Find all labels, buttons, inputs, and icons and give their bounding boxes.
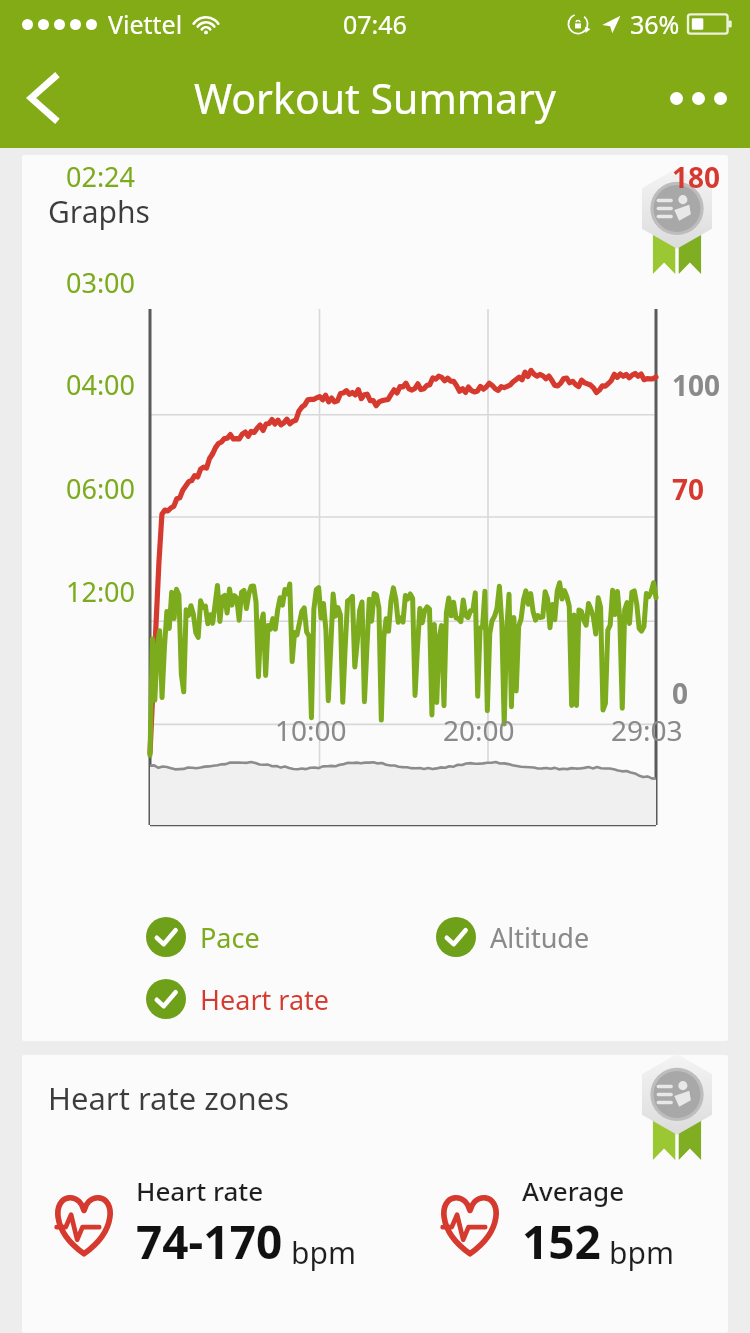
staticText: 03:00 (66, 264, 136, 301)
button[interactable]: Average (432, 1173, 674, 1273)
staticText: Average (522, 1173, 625, 1208)
staticText: 180 (672, 158, 721, 196)
staticText: 06:00 (66, 470, 136, 507)
button[interactable]: Heart rate (144, 977, 332, 1021)
staticText: 20:00 (443, 711, 515, 749)
staticText: Viettel (108, 7, 183, 41)
staticText: 70 (672, 470, 705, 508)
staticText: Heart rate zones (48, 1077, 290, 1119)
staticText: 29:03 (611, 711, 683, 749)
staticText: 02:24 (66, 158, 136, 195)
staticText: Altitude (490, 919, 590, 956)
staticText: Heart rate (136, 1173, 264, 1208)
button[interactable]: More options (658, 62, 738, 134)
staticText: 36% (630, 7, 680, 41)
staticText: Workout Summary (194, 70, 556, 126)
button[interactable]: Back (8, 62, 80, 134)
staticText: Pace (200, 919, 260, 956)
button[interactable]: Heart rate (46, 1173, 356, 1273)
staticText: 12:00 (66, 573, 136, 610)
staticText: 152 (522, 1210, 601, 1273)
staticText: Graphs (48, 191, 150, 232)
staticText: 74-170 (136, 1210, 283, 1273)
staticText: 07:46 (343, 7, 407, 41)
staticText: 10:00 (275, 711, 347, 749)
staticText: bpm (291, 1232, 356, 1273)
staticText: 04:00 (66, 366, 136, 403)
staticText: 0 (672, 674, 689, 712)
staticText: 100 (672, 366, 721, 404)
button[interactable]: Pace (144, 915, 262, 959)
staticText: bpm (609, 1232, 674, 1273)
button[interactable]: Altitude (434, 915, 592, 959)
staticText: Heart rate (200, 981, 330, 1018)
